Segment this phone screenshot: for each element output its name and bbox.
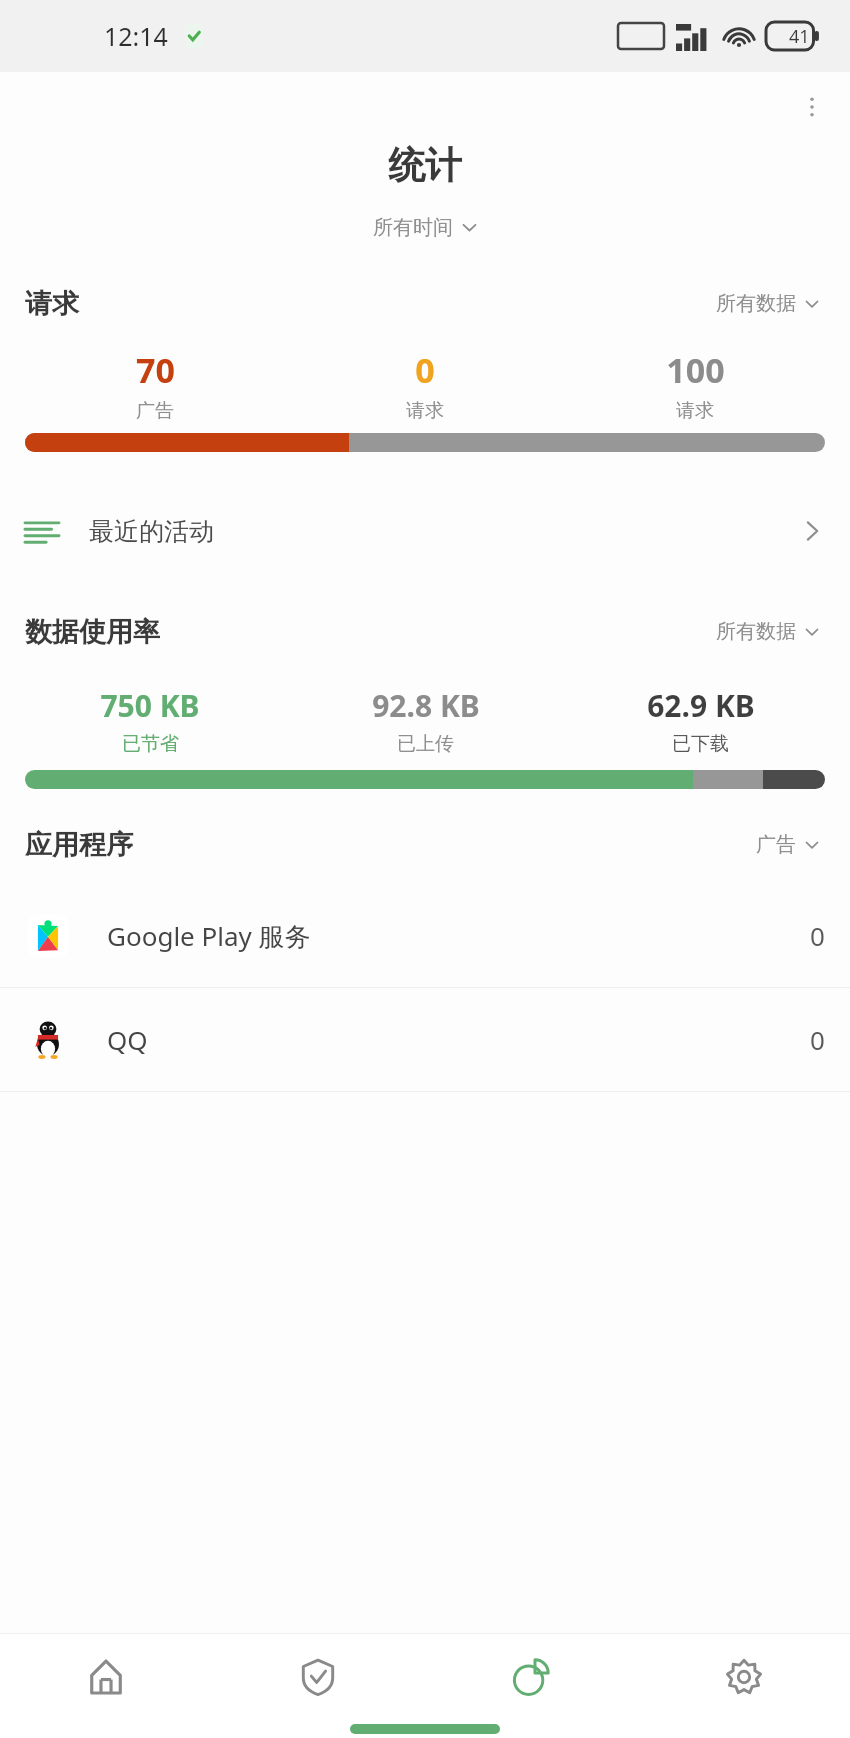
staticText: 70 — [136, 347, 175, 393]
button[interactable]: 所有数据 — [710, 286, 825, 321]
staticText: 已下载 — [672, 732, 729, 756]
staticText: 62.9 KB — [647, 685, 755, 726]
staticText: 请求 — [406, 399, 444, 423]
button[interactable]: QQ — [0, 988, 850, 1091]
staticText: 请求 — [25, 287, 79, 321]
staticText: 所有时间 — [373, 215, 453, 240]
staticText: 0 — [810, 918, 825, 953]
staticText: 已节省 — [122, 732, 179, 756]
staticText: 所有数据 — [716, 619, 796, 644]
staticText: 0 — [415, 347, 435, 393]
staticText: QQ — [107, 1022, 148, 1057]
button[interactable]: Protection — [212, 1634, 424, 1720]
button[interactable]: 所有数据 — [710, 614, 825, 649]
staticText: 广告 — [136, 399, 174, 423]
staticText: 已上传 — [397, 732, 454, 756]
button[interactable]: Google Play 服务 — [0, 884, 850, 987]
button[interactable]: More options — [788, 83, 836, 131]
staticText: 750 KB — [100, 685, 200, 726]
staticText: 0 — [810, 1022, 825, 1057]
staticText: 所有数据 — [716, 291, 796, 316]
staticText: Google Play 服务 — [107, 918, 311, 954]
staticText: 请求 — [676, 399, 714, 423]
staticText: 最近的活动 — [89, 516, 214, 547]
staticText: 应用程序 — [25, 828, 133, 862]
staticText: 数据使用率 — [25, 615, 160, 649]
staticText: 92.8 KB — [372, 685, 480, 726]
button[interactable]: 广告 — [750, 827, 825, 862]
staticText: 100 — [666, 347, 725, 393]
button[interactable]: 所有时间 — [367, 211, 483, 244]
button[interactable]: Settings — [637, 1634, 850, 1720]
staticText: 广告 — [756, 832, 796, 857]
button[interactable]: 最近的活动 — [0, 504, 850, 558]
button[interactable]: Statistics — [424, 1634, 637, 1720]
button[interactable]: Home — [0, 1634, 212, 1720]
staticText: 12:14 — [104, 19, 168, 53]
staticText: 41 — [789, 24, 810, 49]
staticText: 统计 — [388, 142, 462, 189]
